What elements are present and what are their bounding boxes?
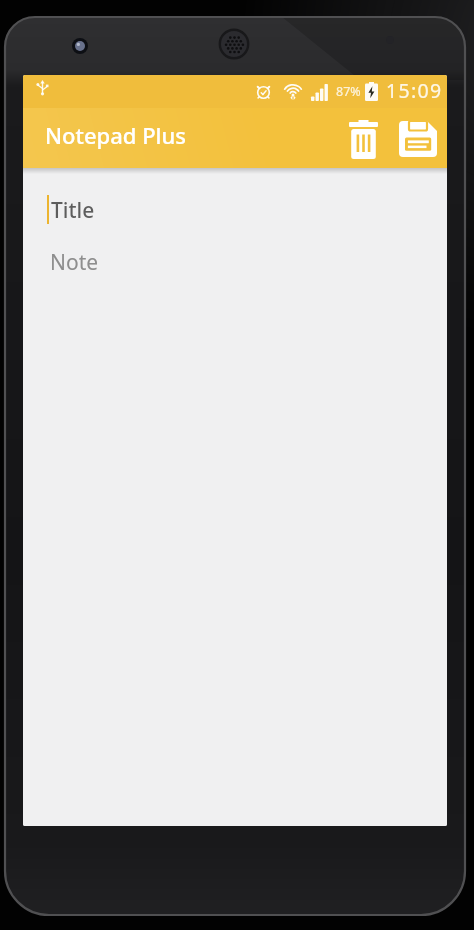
button[interactable]: Note <box>23 242 447 282</box>
staticText: Title <box>51 196 95 225</box>
button[interactable] <box>395 116 441 162</box>
staticText: Note <box>50 248 99 277</box>
staticText: Notepad Plus <box>45 120 186 150</box>
staticText: 15:09 <box>386 77 443 104</box>
button[interactable]: Title <box>23 186 447 230</box>
button[interactable] <box>343 116 383 162</box>
staticText: 87% <box>336 83 361 100</box>
